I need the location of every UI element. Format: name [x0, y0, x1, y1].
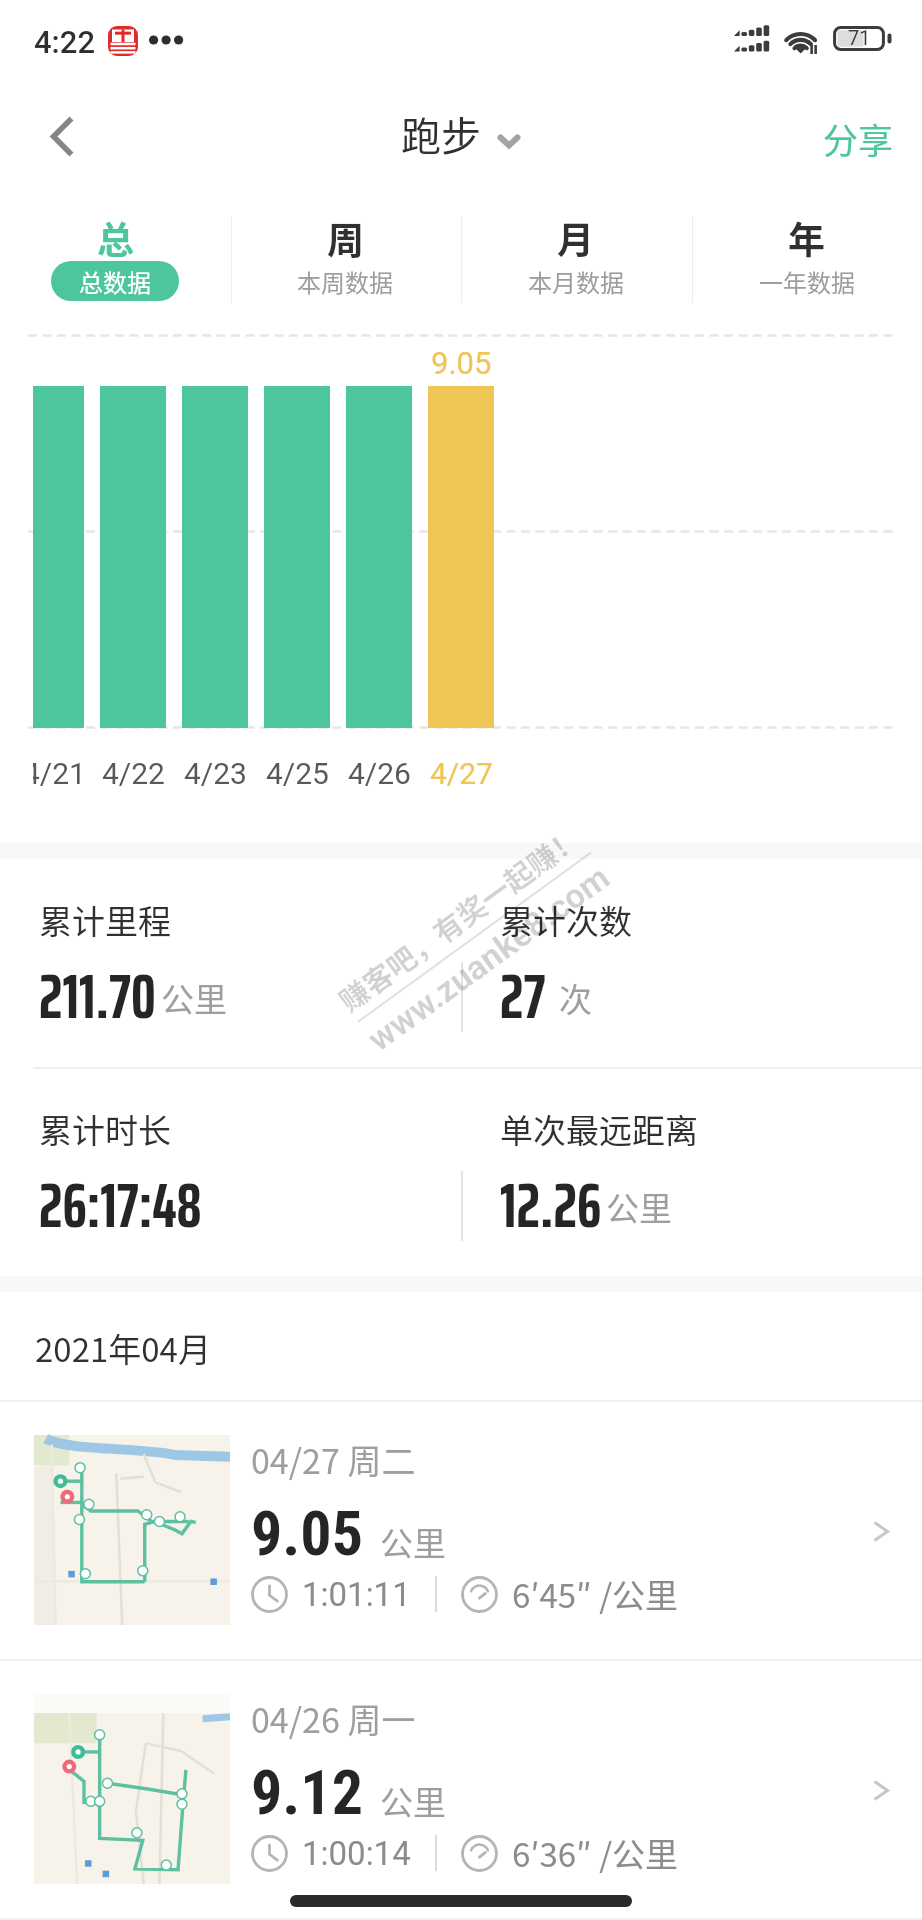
staticText: 赚客吧，有奖一起赚！ — [329, 815, 589, 1020]
staticText: 单次最远距离 — [500, 1105, 698, 1153]
staticText: 本月数据 — [528, 264, 624, 299]
staticText: 公里 — [606, 1183, 672, 1231]
staticText: 累计次数 — [500, 896, 632, 944]
staticText: 一年数据 — [759, 264, 855, 299]
button[interactable]: 年 — [691, 190, 922, 330]
staticText: 分享 — [823, 113, 894, 164]
staticText: 年 — [788, 211, 825, 265]
staticText: 6′36″ /公里 — [512, 1829, 679, 1877]
staticText: 4/21 — [33, 756, 85, 791]
button[interactable]: 04/26 周一 — [0, 1661, 922, 1920]
staticText: 累计里程 — [39, 896, 171, 944]
staticText: 6′45″ /公里 — [512, 1570, 679, 1618]
staticText: 月 — [557, 211, 594, 265]
staticText: 9.12 — [251, 1756, 364, 1829]
staticText: 4/23 — [184, 756, 247, 791]
staticText: 26:17:48 — [39, 1157, 202, 1255]
button[interactable]: 周 — [230, 190, 460, 330]
staticText: 9.05 — [431, 345, 492, 381]
staticText: 公里 — [161, 974, 227, 1022]
staticText: 总数据 — [79, 264, 151, 299]
button[interactable]: 04/27 周二 — [0, 1402, 922, 1661]
button[interactable]: 月 — [460, 190, 691, 330]
staticText: 周 — [327, 211, 364, 265]
staticText: 1:00:14 — [302, 1834, 411, 1873]
staticText: 71 — [848, 26, 871, 49]
staticText: 公里 — [380, 1777, 446, 1825]
staticText: 累计时长 — [39, 1105, 171, 1153]
staticText: 04/26 周一 — [251, 1694, 416, 1743]
staticText: 跑步 — [401, 105, 481, 163]
staticText: 04/27 周二 — [251, 1435, 416, 1484]
staticText: 4:22 — [34, 24, 96, 60]
staticText: 211.70 — [39, 948, 156, 1046]
button[interactable]: 总 — [0, 190, 230, 330]
staticText: 2021年04月 — [35, 1324, 211, 1372]
button[interactable]: 分享 — [799, 90, 922, 190]
staticText: 公里 — [380, 1518, 446, 1566]
staticText: 9.05 — [251, 1497, 364, 1570]
button[interactable]: Back — [0, 90, 118, 190]
staticText: 总 — [97, 211, 134, 265]
staticText: 本周数据 — [297, 264, 393, 299]
staticText: 4/25 — [266, 756, 329, 791]
staticText: 4/26 — [348, 756, 411, 791]
staticText: 27 — [500, 948, 546, 1046]
staticText: 次 — [559, 974, 592, 1022]
staticText: 12.26 — [500, 1157, 602, 1255]
staticText: 1:01:11 — [302, 1575, 411, 1614]
staticText: 4/22 — [102, 756, 165, 791]
button[interactable]: 跑步 — [390, 90, 532, 190]
staticText: www.zuanke8.com — [360, 857, 617, 1059]
staticText: 4/27 — [430, 756, 493, 791]
